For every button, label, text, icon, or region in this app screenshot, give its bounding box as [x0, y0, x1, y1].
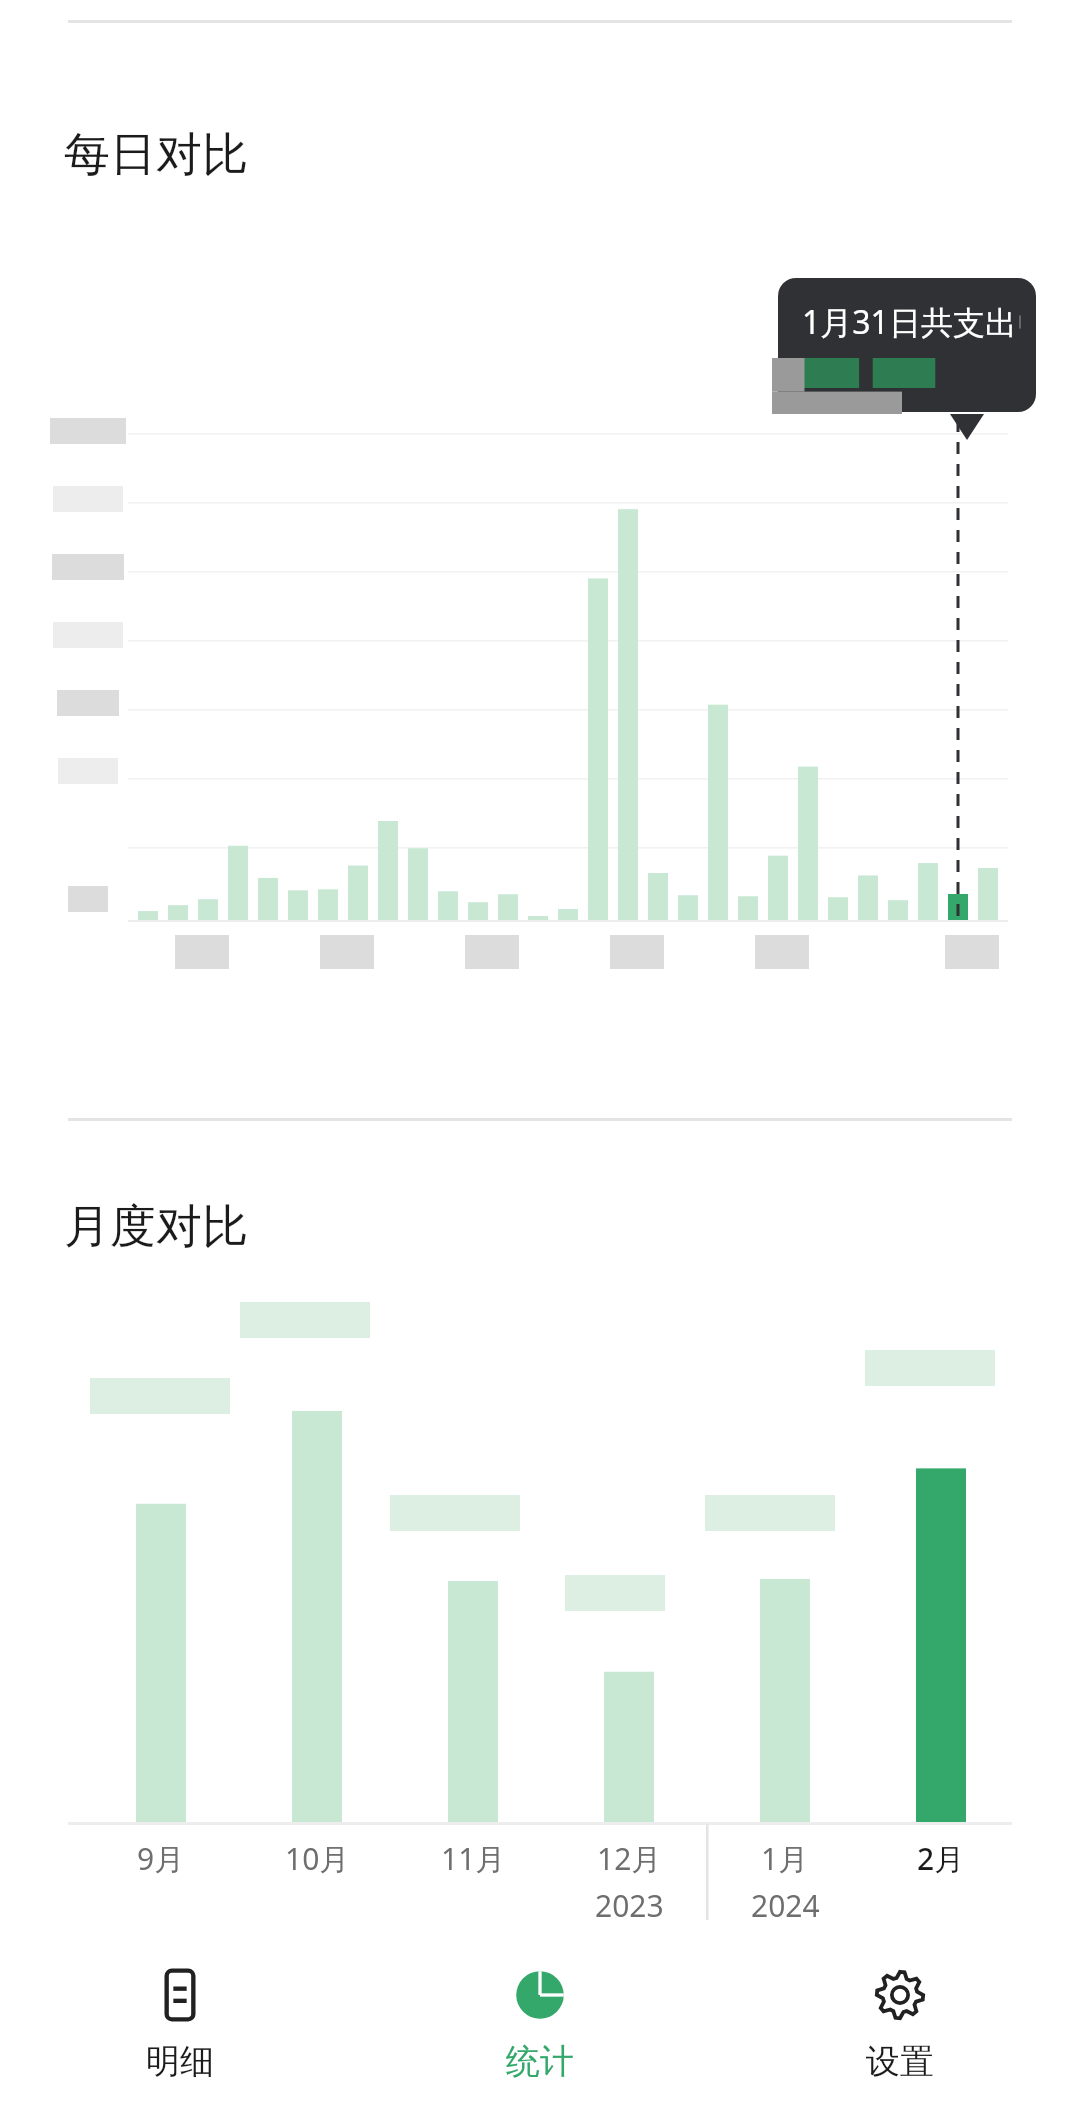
- button[interactable]: 明细: [0, 1932, 360, 2125]
- staticText: 1月: [761, 1838, 809, 1879]
- button[interactable]: 统计: [360, 1932, 720, 2125]
- staticText: 9月: [137, 1838, 185, 1879]
- staticText: 月度对比: [64, 1198, 248, 1256]
- button[interactable]: 设置: [720, 1932, 1080, 2125]
- staticText: 明细: [146, 2040, 214, 2083]
- staticText: 10月: [285, 1838, 350, 1879]
- staticText: 统计: [506, 2040, 574, 2083]
- staticText: 每日对比: [64, 126, 248, 184]
- staticText: 11月: [441, 1838, 506, 1879]
- staticText: 2023: [595, 1885, 664, 1926]
- staticText: 设置: [866, 2040, 934, 2083]
- staticText: 2月: [917, 1838, 965, 1879]
- button[interactable]: 1月31日共支出: [778, 278, 1036, 412]
- staticText: 1月31日共支出: [802, 300, 1017, 344]
- staticText: 2024: [751, 1885, 820, 1926]
- staticText: 12月: [597, 1838, 662, 1879]
